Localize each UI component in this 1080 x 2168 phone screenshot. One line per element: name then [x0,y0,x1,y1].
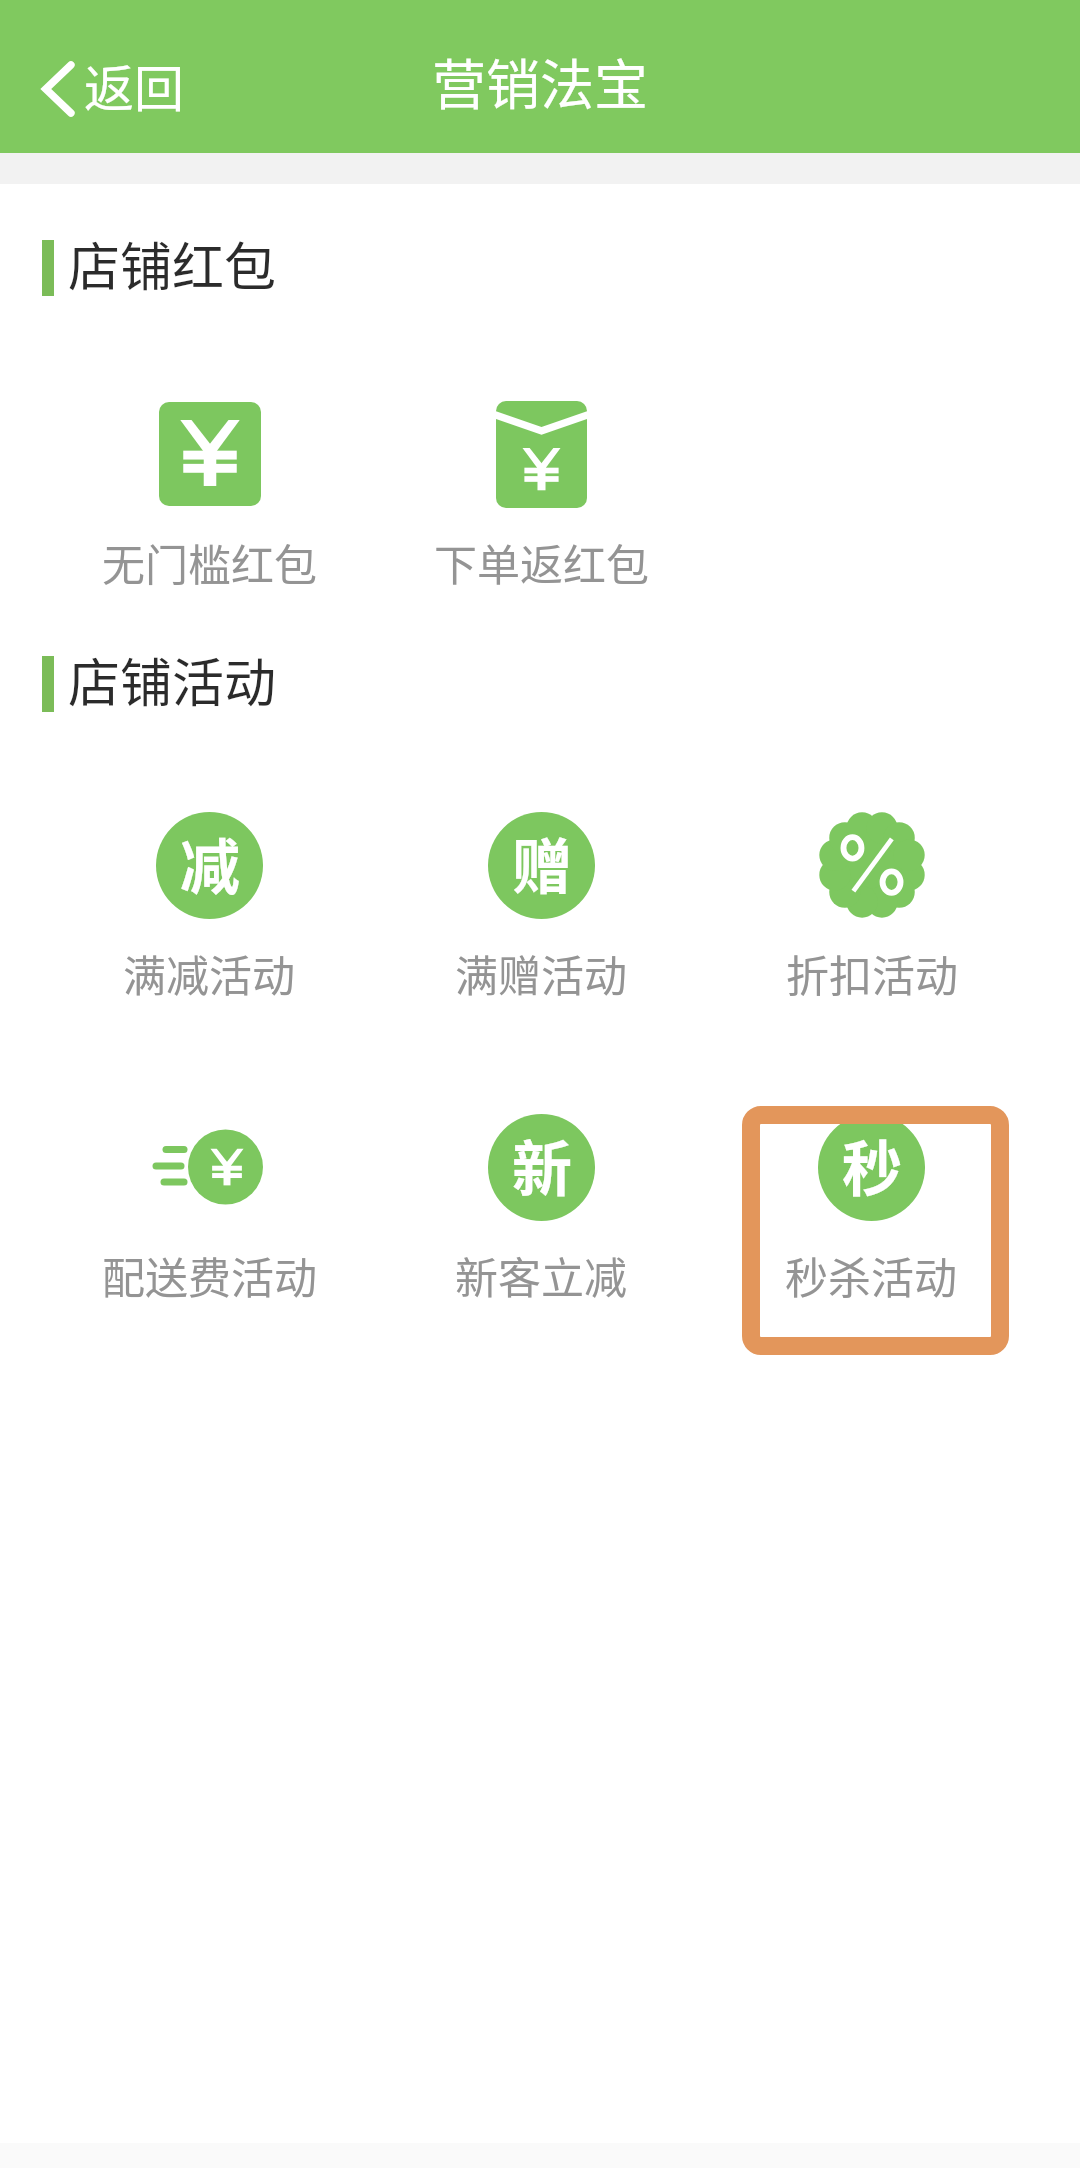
button[interactable]: 无门槛红包 [59,400,359,620]
button[interactable]: 减 [59,811,359,1031]
button[interactable]: 配送费活动 [59,1113,359,1333]
staticText: 满赠活动 [455,942,627,1004]
staticText: 折扣活动 [786,942,958,1004]
staticText: 新客立减 [455,1244,627,1306]
staticText: 无门槛红包 [102,531,317,593]
staticText: 赠 [512,819,572,906]
staticText: 减 [180,819,240,906]
staticText: 秒杀活动 [785,1244,957,1306]
other: 返回 [41,61,75,117]
staticText: 新 [512,1121,572,1208]
staticText: 店铺活动 [68,642,277,717]
button[interactable]: 赠 [391,811,691,1031]
staticText: 秒 [842,1121,902,1208]
staticText: 营销法宝 [432,42,648,120]
staticText: 返回 [84,49,184,121]
button[interactable]: 新 [391,1113,691,1333]
staticText: 满减活动 [123,942,295,1004]
staticText: 店铺红包 [68,226,277,301]
staticText: 下单返红包 [434,531,649,593]
button[interactable]: 下单返红包 [391,400,691,620]
button[interactable]: 返回 [31,41,194,137]
staticText: 配送费活动 [102,1244,317,1306]
button[interactable]: 折扣活动 [722,811,1022,1031]
button[interactable]: 秒 [742,1106,1009,1355]
